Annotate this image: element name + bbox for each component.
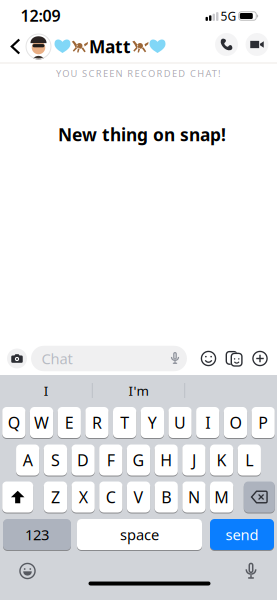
button[interactable]: S: [44, 444, 67, 476]
staticText: I: [44, 382, 49, 399]
button[interactable]: F: [99, 444, 122, 476]
button[interactable]: I'm: [98, 377, 178, 403]
button[interactable]: C: [99, 481, 122, 513]
staticText: I: [205, 412, 210, 433]
staticText: E: [65, 412, 74, 433]
button[interactable]: Back: [6, 33, 25, 59]
staticText: G: [132, 449, 144, 471]
button[interactable]: X: [71, 481, 95, 513]
staticText: U: [174, 412, 186, 433]
staticText: D: [77, 449, 89, 471]
staticText: X: [79, 486, 88, 508]
button[interactable]: Chat: [31, 346, 187, 371]
staticText: Chat: [41, 349, 72, 368]
button[interactable]: N: [182, 481, 206, 513]
staticText: send: [225, 525, 258, 544]
staticText: J: [192, 449, 196, 471]
button[interactable]: More: [251, 349, 269, 367]
button[interactable]: space: [77, 518, 202, 550]
staticText: Matt: [89, 35, 131, 58]
button[interactable]: A: [16, 444, 39, 476]
button[interactable]: Emoji keyboard: [19, 563, 36, 579]
staticText: W: [34, 412, 49, 433]
staticText: Q: [8, 412, 20, 433]
staticText: O: [229, 412, 241, 433]
button[interactable]: Delete: [244, 481, 275, 513]
button[interactable]: Video call: [245, 33, 268, 56]
staticText: M: [214, 486, 229, 508]
staticText: I'm: [128, 382, 148, 399]
staticText: YOU SCREEN RECORDED CHAT!: [56, 67, 221, 80]
button[interactable]: O: [224, 406, 247, 438]
button[interactable]: Q: [2, 406, 25, 438]
button[interactable]: B: [155, 481, 178, 513]
staticText: 12:09: [20, 5, 60, 26]
button[interactable]: 123: [3, 518, 71, 550]
button[interactable]: Y: [141, 406, 164, 438]
button[interactable]: I: [6, 377, 86, 403]
staticText: L: [245, 449, 253, 471]
button[interactable]: P: [251, 406, 275, 438]
button[interactable]: K: [210, 444, 233, 476]
button[interactable]: J: [182, 444, 205, 476]
button[interactable]: W: [30, 406, 53, 438]
staticText: S: [51, 449, 60, 471]
staticText: V: [134, 486, 144, 508]
staticText: 5G: [220, 8, 236, 24]
staticText: 123: [25, 525, 49, 544]
button[interactable]: Camera: [7, 348, 27, 368]
staticText: Z: [51, 486, 60, 508]
staticText: P: [258, 412, 268, 433]
staticText: R: [92, 412, 102, 433]
staticText: space: [120, 525, 159, 544]
staticText: T: [120, 412, 129, 433]
button[interactable]: Dictation: [241, 562, 260, 581]
button[interactable]: Emoji: [201, 351, 216, 366]
staticText: C: [106, 486, 116, 508]
staticText: B: [161, 486, 171, 508]
staticText: Y: [148, 412, 157, 433]
button[interactable]: Matt: [25, 33, 165, 59]
button[interactable]: H: [154, 444, 178, 476]
staticText: N: [188, 486, 200, 508]
button[interactable]: T: [113, 406, 136, 438]
staticText: A: [23, 449, 33, 471]
button[interactable]: send: [210, 518, 274, 550]
button[interactable]: V: [127, 481, 150, 513]
button[interactable]: I: [196, 406, 219, 438]
button[interactable]: Shift: [2, 481, 33, 513]
staticText: New thing on snap!: [58, 123, 226, 146]
button[interactable]: E: [58, 406, 81, 438]
button[interactable]: D: [71, 444, 95, 476]
button[interactable]: Z: [44, 481, 67, 513]
button[interactable]: U: [168, 406, 192, 438]
button[interactable]: L: [238, 444, 261, 476]
button[interactable]: Voice call: [215, 33, 238, 56]
button[interactable]: R: [85, 406, 109, 438]
button[interactable]: G: [127, 444, 150, 476]
staticText: H: [160, 449, 172, 471]
button[interactable]: Stickers: [224, 349, 244, 367]
staticText: K: [217, 449, 227, 471]
staticText: F: [107, 449, 115, 471]
button[interactable]: M: [210, 481, 233, 513]
